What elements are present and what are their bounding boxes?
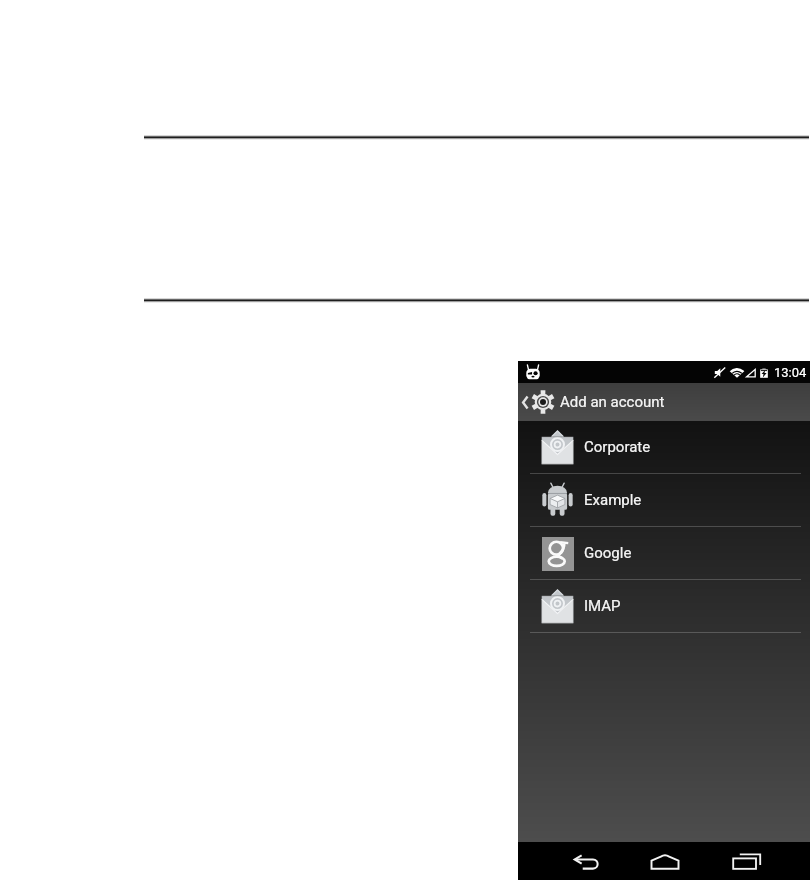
staticText: Add an account bbox=[560, 393, 665, 411]
button[interactable]: IMAP bbox=[518, 580, 810, 632]
button[interactable]: Navigate up to Settings bbox=[518, 383, 671, 421]
button[interactable]: Example bbox=[518, 474, 810, 526]
staticText: 13:04 bbox=[774, 365, 807, 380]
other: System status bbox=[525, 364, 541, 380]
button[interactable]: Back bbox=[564, 842, 608, 880]
button[interactable]: Corporate bbox=[518, 421, 810, 473]
staticText: IMAP bbox=[584, 597, 621, 615]
staticText: Example bbox=[584, 491, 642, 509]
button[interactable]: Google bbox=[518, 527, 810, 579]
staticText: Corporate bbox=[584, 438, 651, 456]
staticText: Google bbox=[584, 544, 632, 562]
button[interactable]: Home bbox=[643, 842, 687, 880]
button[interactable]: Recent apps bbox=[725, 842, 769, 880]
